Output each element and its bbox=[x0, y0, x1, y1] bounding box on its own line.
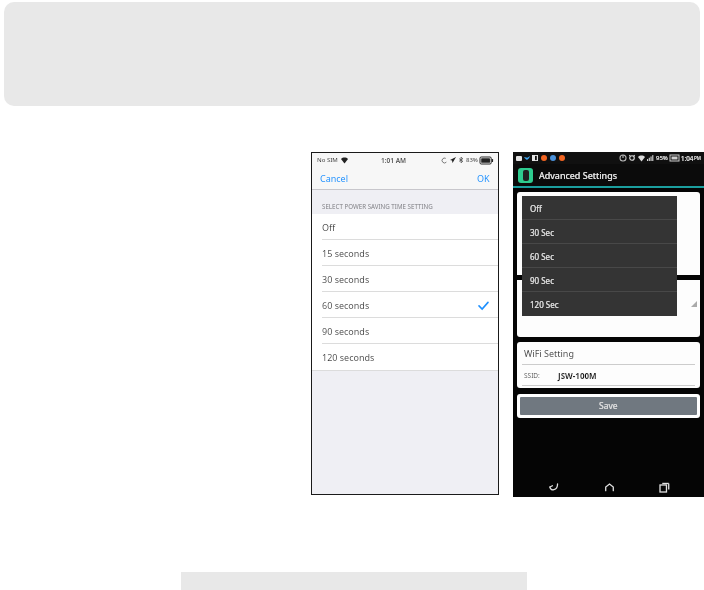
staticText: OK bbox=[477, 172, 490, 184]
staticText: Off bbox=[530, 203, 542, 214]
button[interactable]: 60 seconds bbox=[312, 292, 498, 318]
button[interactable]: 120 seconds bbox=[312, 344, 498, 370]
button[interactable]: 30 Sec bbox=[522, 220, 677, 244]
staticText: WiFi Setting bbox=[524, 347, 574, 359]
button[interactable]: 90 seconds bbox=[312, 318, 498, 344]
staticText: 1:04 bbox=[681, 154, 694, 162]
button[interactable]: Cancel bbox=[320, 167, 349, 189]
staticText: 30 Sec bbox=[530, 227, 554, 238]
staticText: 30 seconds bbox=[322, 273, 370, 285]
staticText: 1:01 AM bbox=[381, 156, 407, 165]
staticText: 90 Sec bbox=[524, 289, 551, 301]
staticText: Off bbox=[322, 221, 336, 233]
button[interactable]: Home bbox=[594, 478, 624, 497]
staticText: 15 seconds bbox=[322, 247, 370, 259]
staticText: Cancel bbox=[320, 172, 349, 184]
staticText: JSW-100M bbox=[558, 370, 597, 381]
button[interactable]: Off bbox=[312, 214, 498, 240]
staticText: No SIM bbox=[317, 156, 338, 164]
button[interactable]: 30 seconds bbox=[312, 266, 498, 292]
button[interactable]: Save bbox=[520, 397, 697, 415]
button[interactable]: 15 seconds bbox=[312, 240, 498, 266]
staticText: 83% bbox=[466, 156, 478, 164]
staticText: 95% bbox=[656, 154, 668, 162]
staticText: SSID: bbox=[524, 371, 540, 380]
staticText: PM bbox=[694, 155, 701, 161]
staticText: 120 seconds bbox=[322, 351, 375, 363]
staticText: Advanced Settings bbox=[539, 169, 617, 181]
staticText: 90 Sec bbox=[530, 275, 554, 286]
button[interactable]: Off bbox=[522, 196, 677, 220]
staticText: 60 Sec bbox=[530, 251, 554, 262]
staticText: SELECT POWER SAVING TIME SETTING bbox=[322, 202, 433, 210]
button[interactable]: 120 Sec bbox=[522, 292, 677, 316]
button[interactable]: 60 Sec bbox=[522, 244, 677, 268]
staticText: Save bbox=[599, 400, 618, 412]
button[interactable]: OK bbox=[477, 167, 490, 189]
staticText: 120 Sec bbox=[530, 299, 559, 310]
button[interactable]: Back bbox=[538, 478, 568, 497]
staticText: 90 seconds bbox=[322, 325, 370, 337]
staticText: 60 seconds bbox=[322, 299, 370, 311]
button[interactable]: 90 Sec bbox=[522, 268, 677, 292]
button[interactable]: Recent apps bbox=[649, 478, 679, 497]
